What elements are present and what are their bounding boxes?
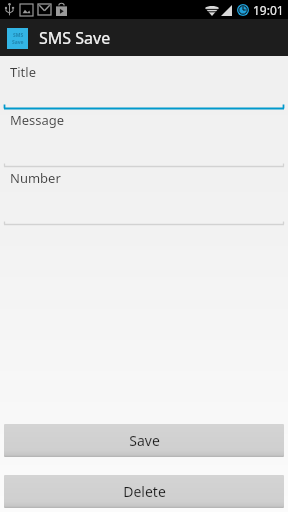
button[interactable]: Save <box>4 424 284 457</box>
button[interactable]: SMS Save app icon <box>7 27 111 49</box>
button[interactable]: Message <box>0 111 288 169</box>
button[interactable]: Delete <box>4 475 284 508</box>
button[interactable]: Number <box>0 169 288 227</box>
staticText: Number <box>10 169 61 187</box>
button[interactable]: Title <box>0 63 288 111</box>
staticText: 19:01 <box>253 2 284 18</box>
staticText: Message <box>10 111 65 129</box>
staticText: Save <box>129 431 160 450</box>
other: SMS Save app icon <box>7 28 28 49</box>
staticText: SMS Save <box>39 27 111 49</box>
staticText: Delete <box>123 482 166 501</box>
staticText: Save <box>12 39 24 46</box>
staticText: SMS <box>13 32 24 39</box>
staticText: Title <box>10 63 36 81</box>
